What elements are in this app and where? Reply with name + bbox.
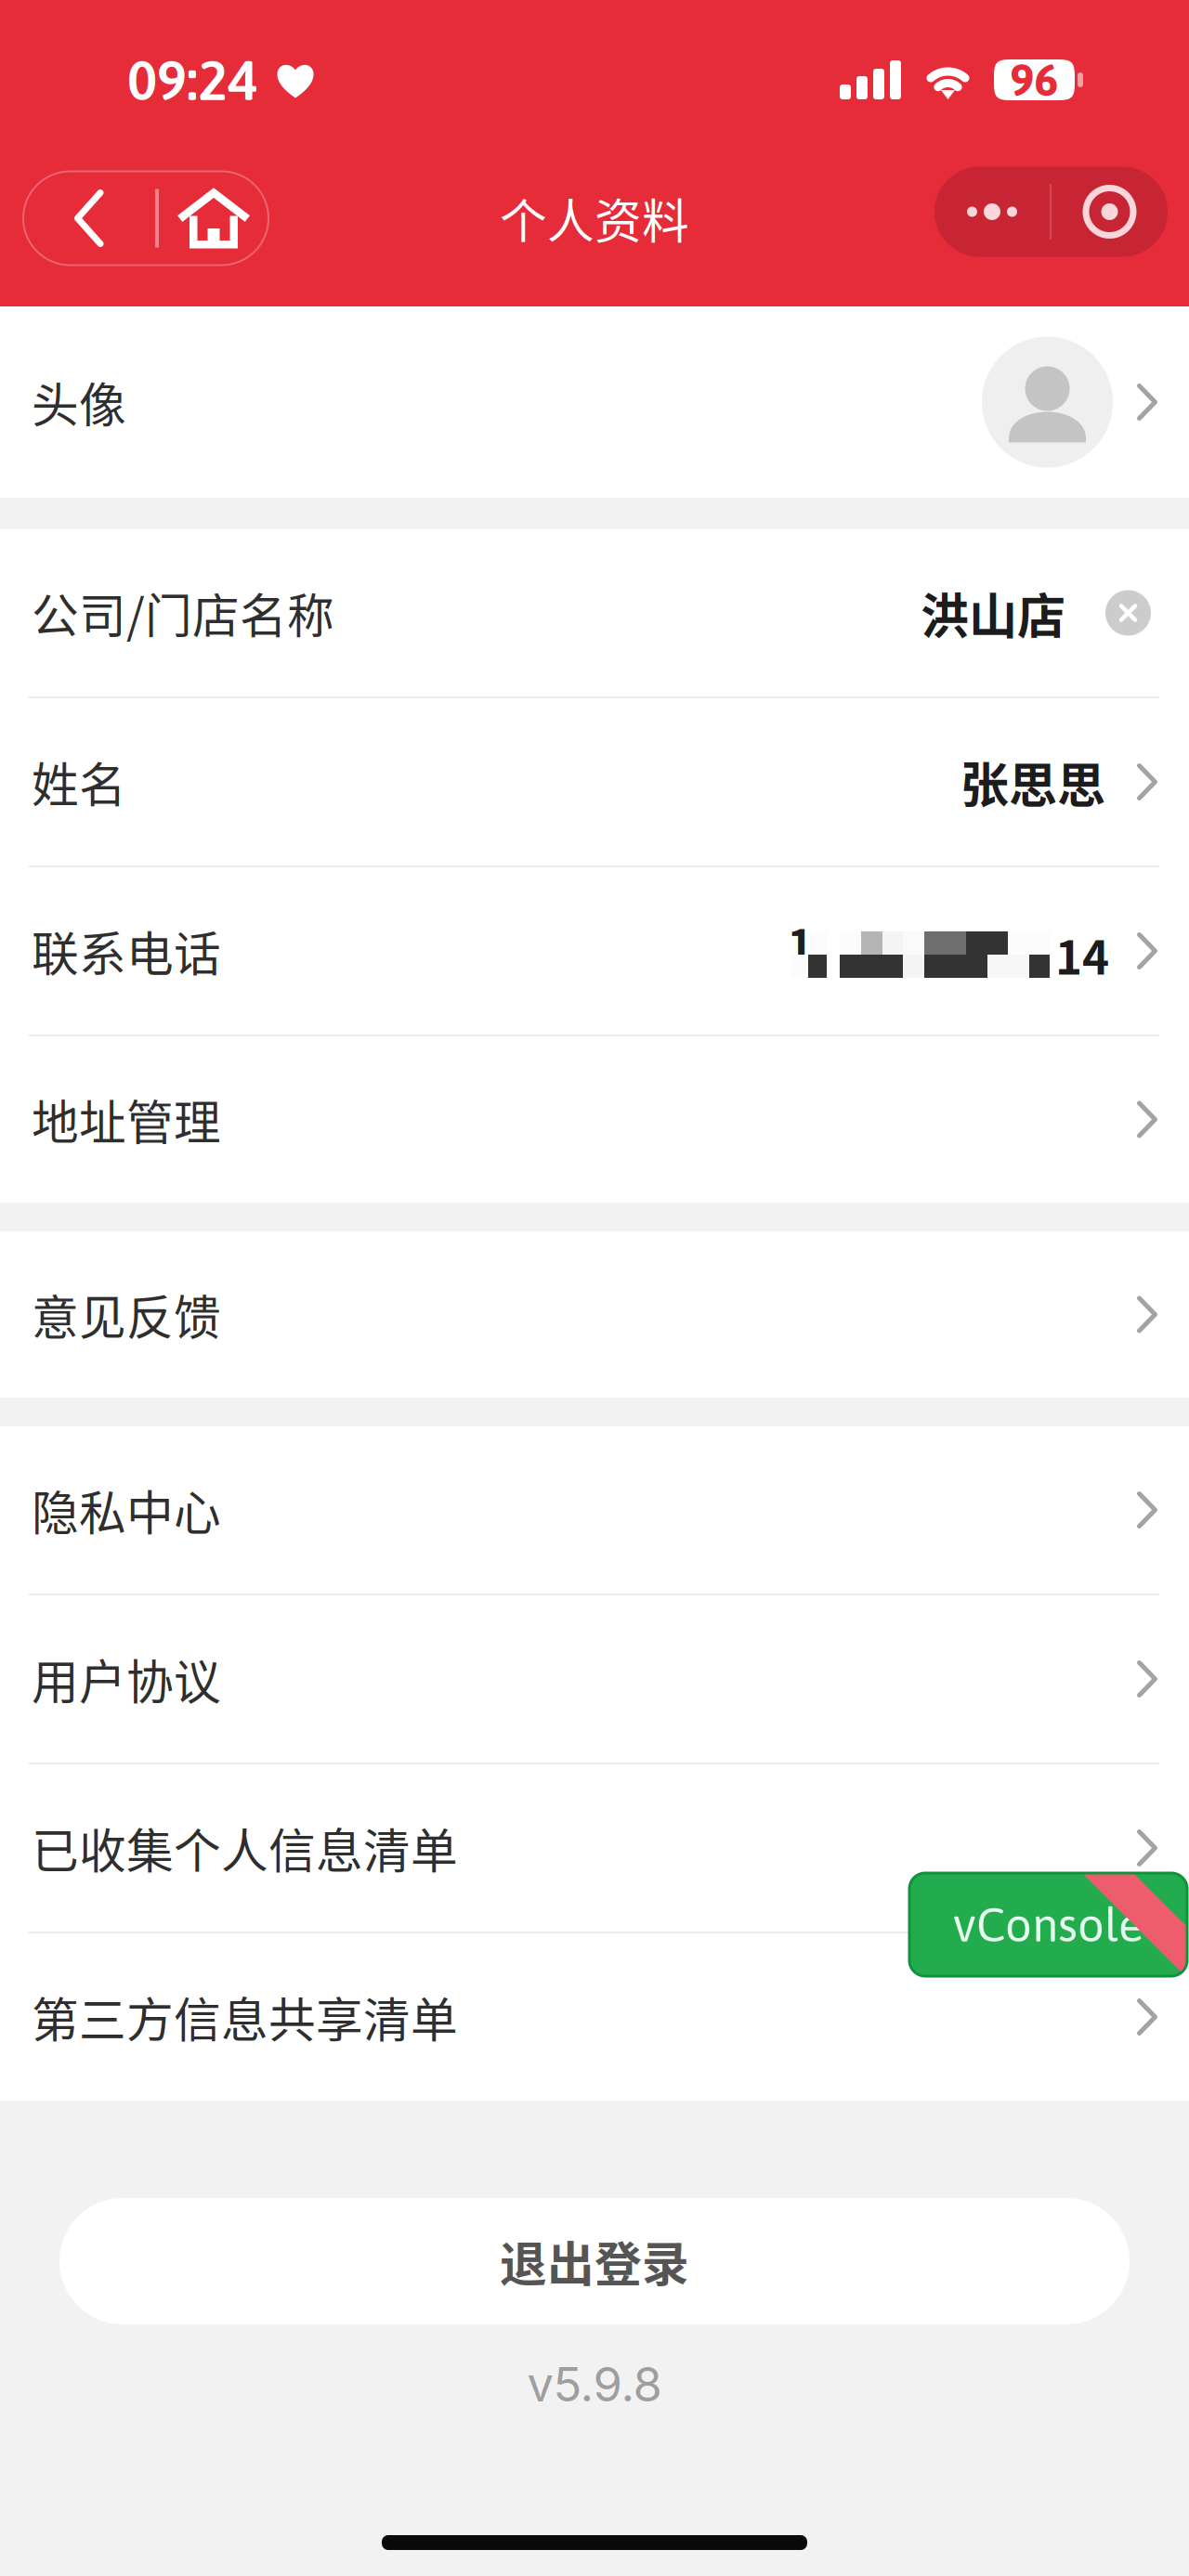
button[interactable]: 头像 bbox=[0, 306, 1189, 498]
staticText: 隐私中心 bbox=[32, 1476, 221, 1544]
staticText: 公司/门店名称 bbox=[32, 579, 334, 647]
staticText: 96 bbox=[1010, 54, 1058, 105]
button[interactable]: 返回 bbox=[23, 171, 155, 265]
staticText: v5.9.8 bbox=[527, 2356, 662, 2413]
button[interactable]: 退出登录 bbox=[59, 2198, 1130, 2324]
button[interactable]: 已收集个人信息清单 bbox=[0, 1764, 1189, 1932]
staticText: 用户协议 bbox=[32, 1645, 221, 1713]
button[interactable]: 首页 bbox=[159, 171, 268, 265]
button[interactable]: 公司/门店名称 bbox=[0, 529, 1189, 696]
button[interactable]: 更多 bbox=[934, 167, 1050, 257]
staticText: 洪山店 bbox=[921, 578, 1065, 648]
staticText: 地址管理 bbox=[32, 1085, 221, 1154]
button[interactable]: 关闭小程序 bbox=[1052, 167, 1168, 257]
staticText: 已收集个人信息清单 bbox=[32, 1814, 458, 1882]
staticText: 14 bbox=[1055, 921, 1109, 988]
staticText: 姓名 bbox=[32, 748, 126, 816]
button[interactable]: 地址管理 bbox=[0, 1036, 1189, 1203]
button[interactable]: 隐私中心 bbox=[0, 1426, 1189, 1594]
button[interactable]: vConsole bbox=[909, 1873, 1187, 1976]
staticText: 1 bbox=[787, 911, 813, 975]
staticText: 意见反馈 bbox=[32, 1280, 221, 1349]
staticText: 头像 bbox=[32, 368, 126, 436]
staticText: 个人资料 bbox=[500, 184, 689, 252]
button[interactable]: 第三方信息共享清单 bbox=[0, 1933, 1189, 2101]
staticText: 联系电话 bbox=[32, 917, 221, 985]
button[interactable]: 联系电话 bbox=[0, 867, 1189, 1034]
staticText: 第三方信息共享清单 bbox=[32, 1983, 458, 2051]
staticText: vConsole bbox=[953, 1898, 1143, 1952]
staticText: 09:24 bbox=[127, 48, 257, 112]
staticText: 张思思 bbox=[960, 747, 1105, 817]
staticText: 退出登录 bbox=[500, 2227, 689, 2295]
button[interactable]: 用户协议 bbox=[0, 1595, 1189, 1763]
button[interactable]: 姓名 bbox=[0, 698, 1189, 865]
button[interactable]: 意见反馈 bbox=[0, 1231, 1189, 1398]
